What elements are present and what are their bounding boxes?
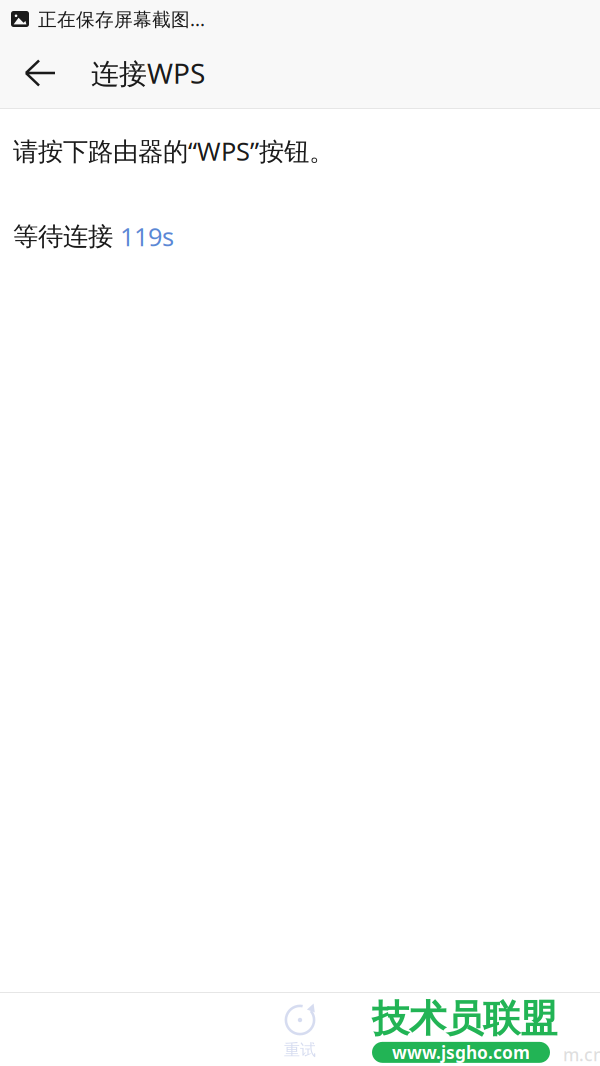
- staticText: 重试: [284, 1040, 316, 1060]
- staticText: 119s: [120, 220, 174, 253]
- staticText: 正在保存屏幕截图...: [38, 7, 205, 31]
- staticText: 请按下路由器的“WPS”按钮。: [13, 134, 334, 168]
- button[interactable]: Back: [13, 38, 80, 108]
- button[interactable]: 重试: [245, 993, 355, 1066]
- staticText: m.cn: [563, 1043, 600, 1066]
- staticText: www.jsgho.com: [392, 1041, 530, 1064]
- staticText: 等待连接: [13, 221, 113, 252]
- staticText: 连接WPS: [91, 54, 205, 92]
- staticText: 技术员联盟: [372, 996, 557, 1042]
